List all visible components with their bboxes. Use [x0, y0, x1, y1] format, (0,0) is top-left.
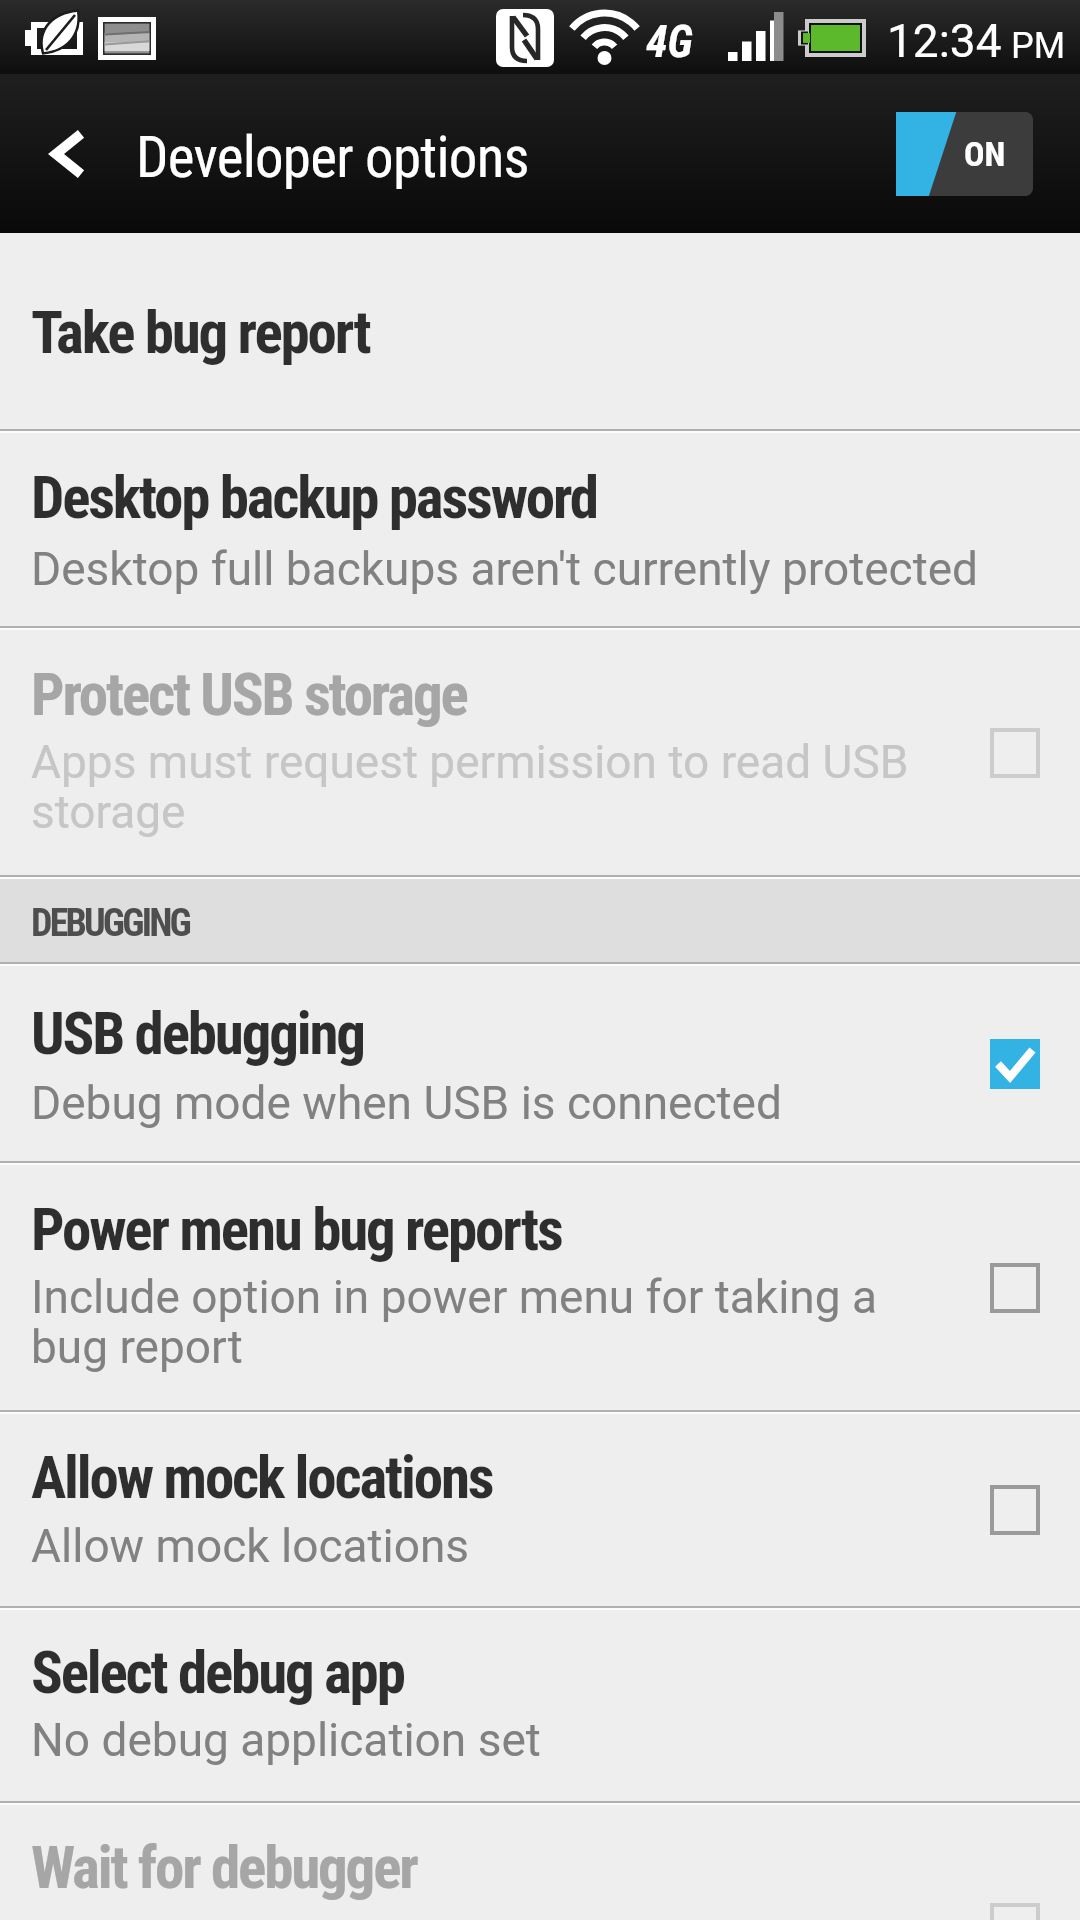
staticText: Select debug app — [31, 1638, 404, 1707]
staticText: 12:34 — [887, 14, 1002, 68]
button[interactable]: Select debug app — [0, 1610, 1080, 1801]
button[interactable]: Allow mock locations — [0, 1414, 1080, 1606]
staticText: Developer options — [136, 124, 529, 191]
staticText: DEBUGGING — [31, 901, 189, 946]
staticText: Desktop backup password — [31, 463, 597, 532]
staticText: Protect USB storage — [31, 660, 467, 729]
button[interactable]: Developer options toggle, on — [896, 112, 1033, 196]
button[interactable]: Back — [0, 74, 136, 233]
staticText: Power menu bug reports — [31, 1195, 562, 1264]
staticText: Include option in power menu for taking … — [31, 1273, 914, 1373]
staticText: PM — [1011, 25, 1066, 67]
button[interactable]: Desktop backup password — [0, 433, 1080, 626]
button[interactable]: Power menu bug reports — [0, 1165, 1080, 1410]
button[interactable]: Protect USB storage — [0, 630, 1080, 875]
staticText: ON — [964, 134, 1006, 174]
staticText: Apps must request permission to read USB… — [31, 738, 914, 838]
staticText: Desktop full backups aren't currently pr… — [31, 545, 979, 595]
staticText: Debug mode when USB is connected — [31, 1079, 782, 1129]
button[interactable]: Wait for debugger — [0, 1805, 1080, 1920]
staticText: No debug application set — [31, 1716, 541, 1766]
staticText: Wait for debugger — [31, 1833, 417, 1902]
staticText: Take bug report — [31, 298, 370, 367]
staticText: USB debugging — [31, 999, 364, 1068]
staticText: Allow mock locations — [31, 1443, 493, 1512]
button[interactable]: USB debugging — [0, 966, 1080, 1161]
staticText: Allow mock locations — [31, 1522, 470, 1572]
button[interactable]: Take bug report — [0, 233, 1080, 429]
staticText: 4G — [646, 16, 693, 68]
